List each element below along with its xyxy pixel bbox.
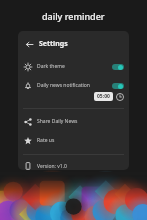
staticText: Daily news notification: [37, 82, 90, 89]
staticText: 05:00: [97, 93, 110, 100]
button[interactable]: Version: v1.0: [18, 162, 129, 170]
button[interactable]: Daily news notification toggle: [112, 83, 124, 89]
button[interactable]: Back: [23, 38, 35, 50]
staticText: Dark theme: [37, 63, 65, 70]
button[interactable]: Dark theme toggle: [112, 64, 124, 70]
staticText: Version: v1.0: [37, 163, 67, 170]
button[interactable]: Share Daily News: [18, 115, 129, 128]
button[interactable]: Daily news notification: [18, 79, 129, 92]
staticText: Rate us: [37, 137, 55, 144]
button[interactable]: Set time: [115, 92, 124, 101]
staticText: Share Daily News: [37, 118, 78, 125]
staticText: Settings: [39, 39, 68, 49]
button[interactable]: Dark theme: [18, 60, 129, 73]
button[interactable]: Rate us: [18, 134, 129, 147]
button[interactable]: 05:00: [94, 92, 113, 101]
staticText: daily reminder: [42, 10, 105, 22]
